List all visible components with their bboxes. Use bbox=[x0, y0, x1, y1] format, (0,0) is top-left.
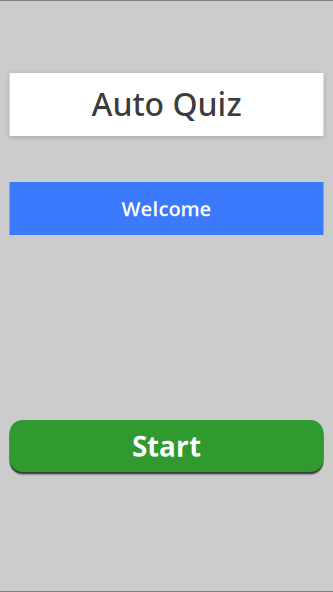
staticText: Welcome bbox=[121, 195, 211, 222]
staticText: Auto Quiz bbox=[91, 82, 241, 125]
button[interactable]: Start bbox=[9, 420, 323, 472]
staticText: Start bbox=[132, 427, 201, 465]
